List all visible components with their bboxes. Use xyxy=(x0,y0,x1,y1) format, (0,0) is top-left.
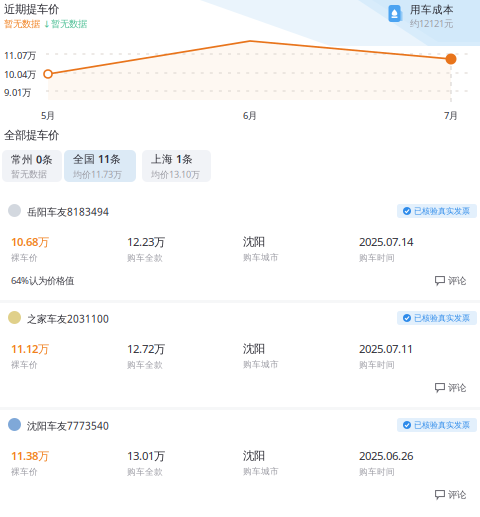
staticText: 5月 xyxy=(41,109,55,122)
button[interactable]: 全国 11条 xyxy=(64,150,136,182)
staticText: 岳阳车友8183494 xyxy=(27,205,109,219)
staticText: 购车时间 xyxy=(359,466,395,477)
staticText: 2025.07.11 xyxy=(359,341,413,356)
staticText: 全部提车价 xyxy=(4,128,59,142)
staticText: 购车全款 xyxy=(127,252,163,263)
button[interactable]: 常州 0条 xyxy=(2,150,62,182)
staticText: 暂无数据 xyxy=(11,169,47,180)
button[interactable]: 已核验真实发票 xyxy=(397,311,477,325)
staticText: 已核验真实发票 xyxy=(414,206,470,216)
staticText: 裸车价 xyxy=(11,466,38,477)
staticText: 沈阳 xyxy=(243,235,265,249)
staticText: 10.68万 xyxy=(11,234,49,249)
staticText: 近期提车价 xyxy=(4,2,59,16)
staticText: 之家车友2031100 xyxy=(27,312,109,326)
button[interactable]: 沈阳车友7773540 xyxy=(0,410,480,514)
staticText: 9.01万 xyxy=(4,86,31,99)
staticText: 上海 1条 xyxy=(151,152,193,166)
button[interactable]: 评论 xyxy=(435,382,466,394)
button[interactable]: 已核验真实发票 xyxy=(397,204,477,218)
staticText: 12.23万 xyxy=(127,234,165,249)
staticText: 沈阳 xyxy=(243,449,265,463)
staticText: 13.01万 xyxy=(127,448,165,463)
staticText: 暂无数据 xyxy=(4,18,40,30)
staticText: 已核验真实发票 xyxy=(414,420,470,430)
staticText: ↓暂无数据 xyxy=(43,18,87,30)
staticText: 购车城市 xyxy=(243,252,279,263)
staticText: 购车时间 xyxy=(359,252,395,263)
staticText: 均价11.73万 xyxy=(73,168,122,180)
staticText: 已核验真实发票 xyxy=(414,313,470,323)
staticText: 裸车价 xyxy=(11,252,38,263)
staticText: 用车成本 xyxy=(410,3,454,16)
staticText: 购车城市 xyxy=(243,359,279,370)
staticText: 购车城市 xyxy=(243,466,279,477)
button[interactable]: 已核验真实发票 xyxy=(397,418,477,432)
button[interactable]: 岳阳车友8183494 xyxy=(0,196,480,300)
staticText: 10.04万 xyxy=(4,68,36,81)
staticText: 7月 xyxy=(444,109,458,122)
staticText: 64%认为价格值 xyxy=(11,274,74,287)
staticText: 评论 xyxy=(448,275,466,287)
staticText: 约12121元 xyxy=(410,17,453,30)
staticText: 11.38万 xyxy=(11,448,49,463)
button[interactable]: 之家车友2031100 xyxy=(0,303,480,407)
staticText: 评论 xyxy=(448,382,466,394)
staticText: 2025.07.14 xyxy=(359,234,413,249)
staticText: 全国 11条 xyxy=(73,152,121,166)
staticText: 沈阳 xyxy=(243,342,265,356)
staticText: 裸车价 xyxy=(11,359,38,370)
staticText: 购车全款 xyxy=(127,359,163,370)
staticText: 评论 xyxy=(448,489,466,501)
staticText: 购车全款 xyxy=(127,466,163,477)
staticText: 11.12万 xyxy=(11,341,49,356)
staticText: 沈阳车友7773540 xyxy=(27,419,109,433)
button[interactable]: 评论 xyxy=(435,275,466,287)
button[interactable]: 评论 xyxy=(435,489,466,501)
staticText: 购车时间 xyxy=(359,359,395,370)
staticText: 2025.06.26 xyxy=(359,448,413,463)
staticText: 常州 0条 xyxy=(11,152,53,166)
staticText: 6月 xyxy=(243,109,257,122)
staticText: 均价13.10万 xyxy=(151,168,200,180)
staticText: 12.72万 xyxy=(127,341,165,356)
button[interactable]: 上海 1条 xyxy=(142,150,211,182)
staticText: 11.07万 xyxy=(4,49,36,62)
